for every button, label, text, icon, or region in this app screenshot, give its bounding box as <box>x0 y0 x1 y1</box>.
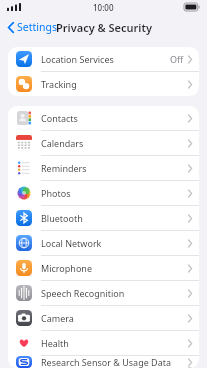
staticText: Health <box>41 337 188 349</box>
staticText: Privacy & Security <box>56 20 152 35</box>
staticText: Settings <box>17 20 57 34</box>
staticText: Microphone <box>41 262 188 274</box>
staticText: Local Network <box>41 237 188 249</box>
staticText: Off <box>170 53 184 65</box>
button[interactable]: Settings <box>5 17 60 37</box>
staticText: Research Sensor & Usage Data <box>41 356 188 368</box>
staticText: Location Services <box>41 53 170 65</box>
staticText: 10:00 <box>93 2 114 13</box>
staticText: Reminders <box>41 162 188 174</box>
button[interactable]: Health <box>8 331 199 355</box>
button[interactable]: Research Sensor & Usage Data <box>8 356 199 368</box>
staticText: Speech Recognition <box>41 287 188 299</box>
button[interactable]: Local Network <box>8 231 199 255</box>
button[interactable]: Bluetooth <box>8 206 199 230</box>
button[interactable]: Calendars <box>8 131 199 155</box>
staticText: Tracking <box>41 78 188 90</box>
staticText: Bluetooth <box>41 212 188 224</box>
button[interactable]: Microphone <box>8 256 199 280</box>
staticText: Contacts <box>41 112 188 124</box>
button[interactable]: Reminders <box>8 156 199 180</box>
staticText: Camera <box>41 312 188 324</box>
button[interactable]: Contacts <box>8 106 199 130</box>
button[interactable]: Camera <box>8 306 199 330</box>
staticText: Calendars <box>41 137 188 149</box>
button[interactable]: Photos <box>8 181 199 205</box>
button[interactable]: Location Services <box>8 47 199 71</box>
staticText: Photos <box>41 187 188 199</box>
button[interactable]: Tracking <box>8 72 199 96</box>
button[interactable]: Speech Recognition <box>8 281 199 305</box>
